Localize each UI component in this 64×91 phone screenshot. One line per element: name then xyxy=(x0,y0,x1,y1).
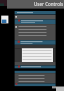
button[interactable]: User Controls xyxy=(0,0,64,9)
staticText: User Controls xyxy=(34,1,64,7)
